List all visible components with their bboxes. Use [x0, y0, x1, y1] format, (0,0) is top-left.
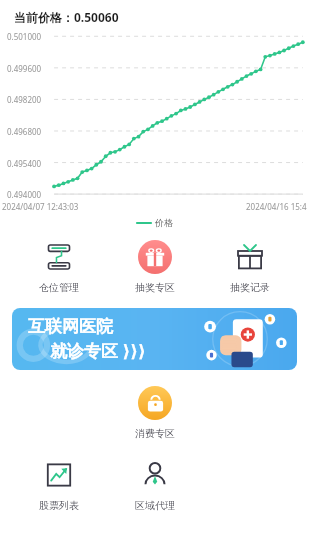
staticText: 区域代理 — [135, 499, 175, 512]
staticText: 0.495400 — [7, 158, 42, 169]
button[interactable]: 区域代理 — [119, 456, 191, 514]
other: 抽奖专区 — [145, 247, 165, 267]
staticText: 抽奖记录 — [230, 281, 270, 294]
other: 区域代理 — [141, 461, 169, 489]
staticText: 0.498200 — [7, 94, 42, 105]
other: 消费专区 — [146, 394, 165, 413]
staticText: 抽奖专区 — [135, 281, 175, 294]
staticText: 股票列表 — [39, 499, 79, 512]
staticText: 当前价格：0.50060 — [14, 9, 119, 25]
button[interactable]: 股票列表 — [23, 456, 95, 514]
button[interactable]: 互联网医院就诊专区 — [12, 308, 297, 370]
button[interactable]: 消费专区 — [119, 384, 191, 442]
staticText: 0.494000 — [7, 189, 42, 200]
staticText: 价格 — [155, 217, 173, 228]
other: 股票列表 — [45, 461, 73, 489]
other: 仓位管理 — [44, 242, 74, 272]
staticText: 消费专区 — [135, 427, 175, 440]
button[interactable]: 抽奖专区 — [119, 238, 191, 296]
button[interactable]: 抽奖记录 — [214, 238, 286, 296]
other: 抽奖记录 — [235, 242, 265, 272]
staticText: 0.501000 — [7, 31, 42, 42]
staticText: 0.499600 — [7, 63, 42, 74]
staticText: 就诊专区 ⟩⟩⟩ — [50, 339, 146, 362]
button[interactable]: 仓位管理 — [23, 238, 95, 296]
staticText: 2024/04/07 12:43:03 — [2, 201, 79, 212]
staticText: 2024/04/16 15:4 — [246, 201, 307, 212]
staticText: 互联网医院 — [28, 316, 113, 337]
staticText: 仓位管理 — [39, 281, 79, 294]
staticText: 0.496800 — [7, 126, 42, 137]
